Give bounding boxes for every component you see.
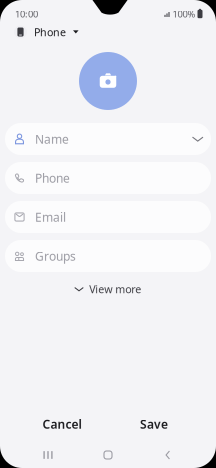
button[interactable]: Name bbox=[5, 123, 211, 155]
button[interactable]: Save bbox=[108, 409, 200, 439]
button[interactable]: Email bbox=[5, 201, 211, 233]
staticText: Phone bbox=[35, 170, 70, 186]
button[interactable]: Cancel bbox=[16, 409, 108, 439]
staticText: Cancel bbox=[42, 416, 81, 432]
button[interactable]: Home bbox=[78, 445, 138, 465]
staticText: 10:00 bbox=[15, 8, 38, 20]
button[interactable]: Groups bbox=[5, 240, 211, 272]
staticText: View more bbox=[89, 282, 141, 296]
button[interactable]: Back bbox=[138, 445, 198, 465]
button[interactable]: Phone bbox=[5, 162, 211, 194]
staticText: Email bbox=[35, 209, 66, 225]
button[interactable]: View more bbox=[65, 277, 151, 301]
staticText: Name bbox=[35, 131, 69, 147]
staticText: Groups bbox=[35, 248, 76, 264]
button[interactable]: Phone bbox=[14, 22, 79, 42]
staticText: Save bbox=[140, 416, 168, 432]
staticText: 100% bbox=[172, 8, 195, 20]
button[interactable]: Add photo bbox=[79, 52, 137, 110]
button[interactable]: Recent apps bbox=[18, 445, 78, 465]
staticText: Phone bbox=[34, 25, 66, 39]
